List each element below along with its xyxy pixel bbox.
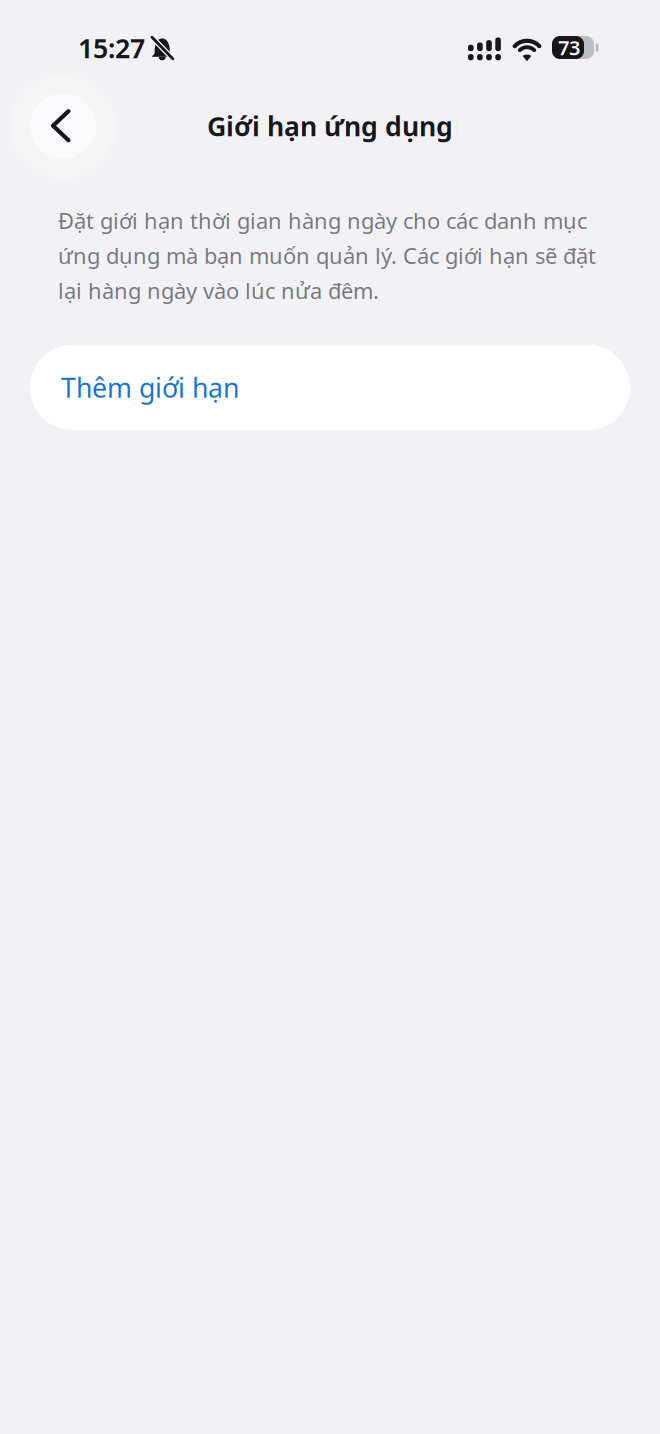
staticText: Đặt giới hạn thời gian hàng ngày cho các… bbox=[58, 206, 596, 305]
staticText: Thêm giới hạn bbox=[61, 370, 239, 405]
staticText: 73 bbox=[558, 34, 580, 61]
button[interactable]: Thêm giới hạn bbox=[30, 345, 630, 430]
button[interactable]: Back bbox=[30, 93, 96, 159]
staticText: 15:27 bbox=[78, 30, 145, 66]
staticText: Giới hạn ứng dụng bbox=[207, 108, 453, 144]
